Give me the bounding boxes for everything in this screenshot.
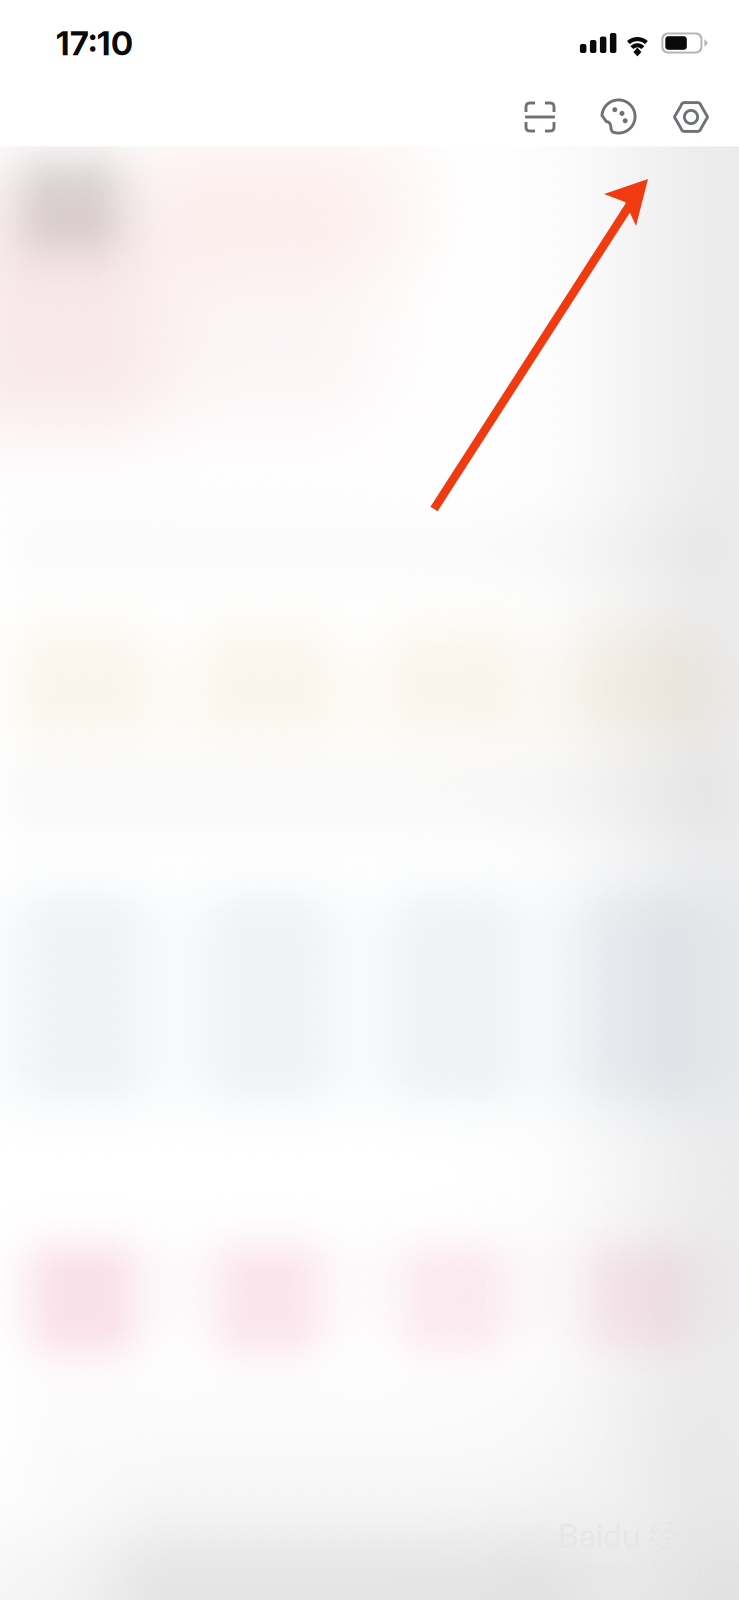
staticText: 17:10 (56, 23, 133, 63)
button[interactable]: Scan (498, 86, 581, 148)
button[interactable]: Theme (581, 86, 654, 148)
button[interactable]: Settings (654, 86, 727, 148)
